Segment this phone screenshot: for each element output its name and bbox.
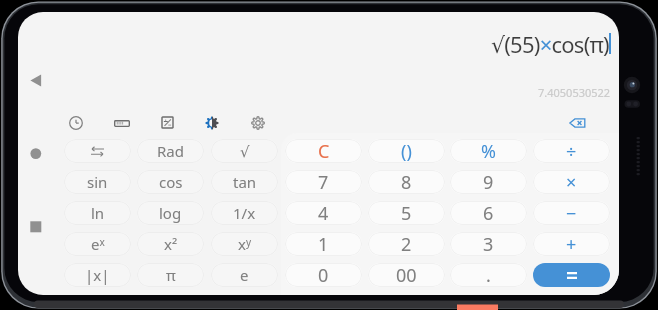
staticText: cos [159, 172, 183, 192]
button[interactable]: x² [137, 232, 204, 256]
staticText: 5 [401, 201, 412, 225]
button[interactable]: Back [18, 59, 55, 103]
button[interactable]: Rad [137, 139, 204, 163]
button[interactable]: 0 [285, 263, 362, 287]
staticText: ln [91, 203, 105, 223]
button[interactable]: sin [64, 170, 131, 194]
staticText: Rad [157, 141, 184, 161]
button[interactable]: 2 [368, 232, 445, 256]
staticText: 00 [396, 263, 417, 287]
button[interactable]: 8 [368, 170, 445, 194]
button[interactable]: % [450, 139, 527, 163]
button[interactable]: 00 [368, 263, 445, 287]
staticText: xy [238, 234, 252, 254]
staticText: 4 [318, 201, 329, 225]
staticText: 7 [318, 170, 329, 194]
staticText: √(55)×cos(π) [491, 29, 609, 59]
button[interactable]: 1 [285, 232, 362, 256]
button[interactable]: 1/x [211, 201, 278, 225]
staticText: e [240, 265, 249, 285]
button[interactable]: 9 [450, 170, 527, 194]
staticText: 1 [318, 232, 329, 256]
staticText: 2 [401, 232, 412, 256]
staticText: 9 [483, 170, 494, 194]
staticText: sin [87, 172, 108, 192]
button[interactable]: Settings [236, 109, 280, 136]
button[interactable]: ex [64, 232, 131, 256]
button[interactable]: Recents [18, 205, 55, 249]
staticText: 0 [318, 263, 329, 287]
button[interactable]: e [211, 263, 278, 287]
button[interactable]: Percentage [145, 109, 189, 136]
staticText: ÷ [566, 139, 577, 163]
staticText: . [486, 263, 491, 287]
staticText: tan [233, 172, 257, 192]
button[interactable]: () [368, 139, 445, 163]
button[interactable]: π [137, 263, 204, 287]
button[interactable]: History [54, 109, 98, 136]
staticText: ex [91, 234, 105, 254]
staticText: log [159, 203, 182, 223]
staticText: √ [240, 143, 250, 160]
staticText: 1/x [233, 203, 256, 223]
button[interactable]: 4 [285, 201, 362, 225]
button[interactable]: ln [64, 201, 131, 225]
button[interactable]: C [285, 139, 362, 163]
staticText: % [481, 139, 496, 163]
button[interactable]: 7 [285, 170, 362, 194]
button[interactable]: Unit converter [100, 110, 144, 137]
staticText: 3 [483, 232, 494, 256]
button[interactable] [533, 263, 610, 287]
button[interactable]: . [450, 263, 527, 287]
button[interactable]: tan [211, 170, 278, 194]
button[interactable]: cos [137, 170, 204, 194]
staticText: − [566, 201, 577, 225]
button[interactable]: log [137, 201, 204, 225]
button[interactable]: 6 [450, 201, 527, 225]
button[interactable]: Home [18, 132, 55, 176]
button[interactable]: − [533, 201, 610, 225]
button[interactable]: √ [211, 139, 278, 163]
staticText: × [566, 170, 577, 194]
staticText: |x| [85, 265, 110, 285]
staticText: () [401, 139, 412, 163]
staticText: π [166, 265, 176, 285]
staticText: C [318, 139, 330, 163]
button[interactable]: Theme [190, 109, 234, 136]
staticText: 7.4050530522 [538, 85, 611, 100]
button[interactable]: + [533, 232, 610, 256]
button[interactable]: xy [211, 232, 278, 256]
button[interactable]: 3 [450, 232, 527, 256]
staticText: x² [164, 234, 178, 254]
staticText: 8 [401, 170, 412, 194]
staticText: 6 [483, 201, 494, 225]
button[interactable]: |x| [64, 263, 131, 287]
button[interactable]: × [533, 170, 610, 194]
button[interactable]: 5 [368, 201, 445, 225]
staticText: + [566, 232, 577, 256]
button[interactable]: ÷ [533, 139, 610, 163]
button[interactable]: Backspace [555, 110, 599, 136]
button[interactable] [64, 139, 131, 163]
